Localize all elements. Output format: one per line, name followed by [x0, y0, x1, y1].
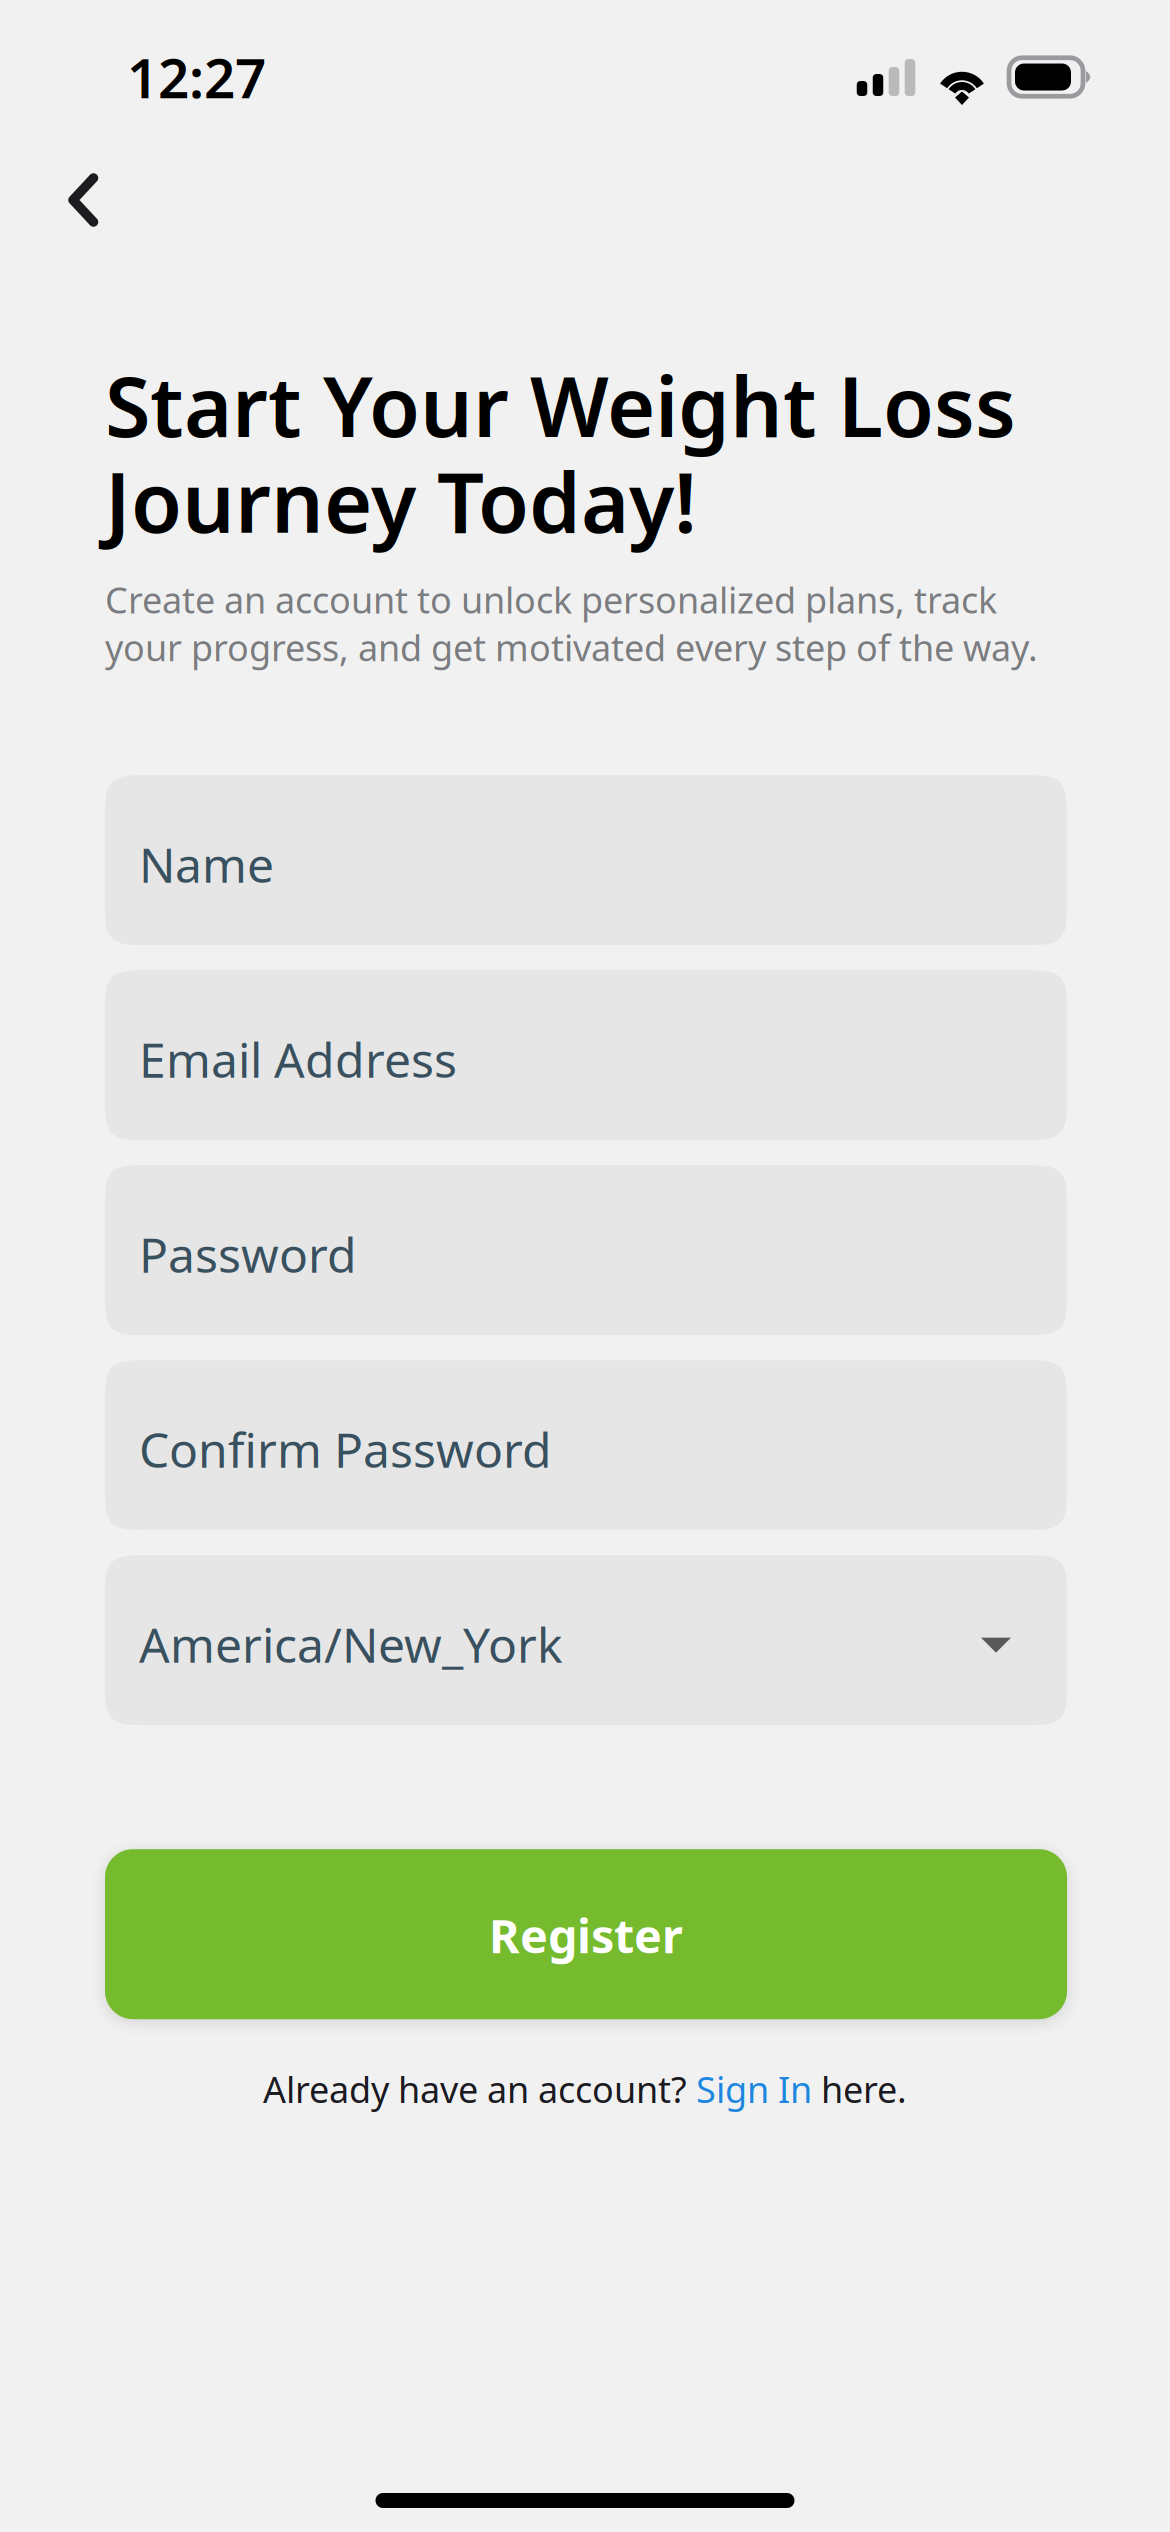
button[interactable]: Already have an account? [263, 2065, 907, 2113]
staticText: Name [139, 832, 274, 896]
button[interactable]: America/New_York [105, 1555, 1067, 1725]
staticText: 12:27 [127, 41, 266, 113]
staticText: Create an account to unlock personalized… [105, 576, 1038, 671]
staticText: Already have an account? [263, 2065, 696, 2113]
button[interactable]: Email Address [105, 970, 1067, 1140]
button[interactable]: Register [105, 1849, 1067, 2019]
staticText: Sign In [696, 2065, 812, 2113]
staticText: Email Address [139, 1027, 457, 1091]
staticText: here. [812, 2065, 907, 2113]
staticText: Password [139, 1222, 357, 1286]
staticText: Start Your Weight Loss Journey Today! [105, 350, 1016, 556]
button[interactable]: Confirm Password [105, 1360, 1067, 1530]
button[interactable]: Password [105, 1165, 1067, 1335]
staticText: Register [489, 1904, 683, 1966]
staticText: Confirm Password [139, 1417, 552, 1481]
button[interactable]: Name [105, 775, 1067, 945]
button[interactable]: Back [0, 161, 133, 245]
staticText: America/New_York [139, 1612, 563, 1676]
